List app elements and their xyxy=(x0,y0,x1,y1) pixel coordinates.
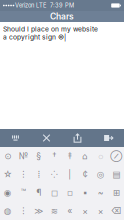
button[interactable]: Close xyxy=(31,129,62,147)
staticText: | xyxy=(68,169,71,180)
staticText: ⌂ xyxy=(82,151,88,161)
button[interactable]: † xyxy=(46,147,62,165)
button[interactable]: ¢ xyxy=(77,165,93,183)
button[interactable]: × xyxy=(93,202,108,220)
button[interactable]: ▪ xyxy=(77,183,93,202)
staticText: ™ xyxy=(21,187,26,198)
button[interactable]: ⌂ xyxy=(77,147,93,165)
button[interactable]: ◉ xyxy=(0,183,15,202)
button[interactable]: × xyxy=(77,202,93,220)
button[interactable]: ☆ xyxy=(0,165,15,183)
button[interactable]: Share xyxy=(62,129,93,147)
button[interactable]: ⊞ xyxy=(108,183,124,202)
staticText: ⁘ xyxy=(51,168,58,180)
staticText: ▪ xyxy=(83,187,88,198)
staticText: ⊘ xyxy=(110,151,122,161)
staticText: ⁝ xyxy=(22,168,24,180)
button[interactable]: ≋ xyxy=(46,202,62,220)
button[interactable]: ◍ xyxy=(0,202,15,220)
button[interactable]: ▤ xyxy=(108,165,124,183)
staticText: 7:39 PM xyxy=(50,2,74,9)
staticText: ≋ xyxy=(51,206,58,216)
button[interactable]: | xyxy=(62,165,77,183)
staticText: § xyxy=(36,151,41,161)
staticText: ¢ xyxy=(83,169,88,180)
button[interactable]: ⊙ xyxy=(0,147,15,165)
button[interactable]: ⊘ xyxy=(108,147,124,165)
staticText: ⌫ xyxy=(111,206,122,216)
button[interactable]: № xyxy=(15,147,31,165)
button[interactable]: ~ xyxy=(93,183,108,202)
button[interactable]: ¶ xyxy=(31,183,46,202)
staticText: Chars xyxy=(50,11,74,22)
staticText: « xyxy=(67,206,72,216)
button[interactable]: ◌ xyxy=(93,147,108,165)
button[interactable]: ™ xyxy=(15,183,31,202)
staticText: ☆ xyxy=(3,169,12,180)
staticText: † xyxy=(52,151,56,161)
button[interactable]: ⁝ xyxy=(15,165,31,183)
button[interactable]: ⌫ xyxy=(108,202,124,220)
staticText: × xyxy=(98,206,104,216)
staticText: № xyxy=(19,151,28,161)
staticText: ⁝ xyxy=(22,205,24,217)
staticText: ◍ xyxy=(4,206,12,216)
staticText: ¶ xyxy=(36,187,41,198)
button[interactable]: Keyboard xyxy=(0,129,31,147)
button[interactable]: « xyxy=(62,202,77,220)
button[interactable]: ⁝ xyxy=(15,202,31,220)
staticText: ▤ xyxy=(112,169,120,179)
staticText: ⊙ xyxy=(4,151,11,161)
staticText: Verizon LTE xyxy=(15,2,46,9)
button[interactable]: ‡ xyxy=(62,147,77,165)
staticText: × xyxy=(82,206,88,216)
staticText: ≫ xyxy=(34,206,43,216)
button[interactable]: Send to app xyxy=(93,129,124,147)
button[interactable]: ⁘ xyxy=(46,165,62,183)
staticText: ◌ xyxy=(98,150,103,162)
button[interactable]: ▫ xyxy=(62,183,77,202)
button[interactable]: ⁞ xyxy=(31,165,46,183)
staticText: ◻ xyxy=(51,188,58,198)
staticText: ◎ xyxy=(97,169,105,179)
staticText: ⊞ xyxy=(113,188,120,198)
staticText: ◉ xyxy=(4,188,12,198)
button[interactable]: ◎ xyxy=(93,165,108,183)
staticText: Should I place on my website a copyright… xyxy=(3,25,98,41)
staticText: ▫ xyxy=(67,188,73,198)
staticText: ~ xyxy=(98,187,104,198)
button[interactable]: § xyxy=(31,147,46,165)
staticText: ⁞ xyxy=(38,168,40,180)
button[interactable]: ◻ xyxy=(46,183,62,202)
button[interactable]: ≫ xyxy=(31,202,46,220)
staticText: ‡ xyxy=(68,151,72,161)
